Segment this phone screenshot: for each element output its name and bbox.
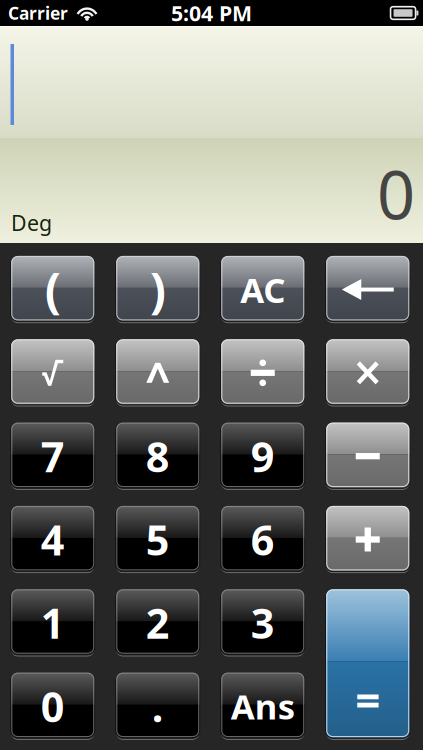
- staticText: (: [45, 258, 61, 321]
- button[interactable]: ): [116, 257, 199, 322]
- staticText: .: [152, 679, 164, 734]
- staticText: 2: [146, 595, 170, 650]
- button[interactable]: 3: [221, 590, 304, 655]
- button[interactable]: 6: [221, 507, 304, 572]
- staticText: 5:04 PM: [171, 0, 252, 27]
- button[interactable]: 4: [11, 507, 94, 572]
- staticText: Carrier: [8, 1, 68, 24]
- button[interactable]: Plus: [326, 507, 409, 572]
- button[interactable]: 0: [11, 674, 94, 739]
- button[interactable]: .: [116, 674, 199, 739]
- staticText: 0: [41, 679, 65, 734]
- button[interactable]: (: [11, 257, 94, 322]
- button[interactable]: Multiply: [326, 340, 409, 405]
- staticText: 4: [41, 512, 65, 567]
- button[interactable]: Square root: [11, 340, 94, 405]
- button[interactable]: Divide: [221, 340, 304, 405]
- button[interactable]: 7: [11, 424, 94, 489]
- staticText: 8: [146, 429, 170, 484]
- staticText: 5: [146, 512, 170, 567]
- staticText: =: [355, 670, 380, 729]
- button[interactable]: Power: [116, 340, 199, 405]
- staticText: AC: [240, 266, 285, 312]
- button[interactable]: =: [326, 590, 409, 739]
- button[interactable]: Ans: [221, 674, 304, 739]
- staticText: Deg: [11, 209, 52, 237]
- button[interactable]: AC: [221, 257, 304, 322]
- staticText: 1: [41, 595, 65, 650]
- button[interactable]: Minus: [326, 424, 409, 489]
- staticText: 6: [251, 512, 275, 567]
- button[interactable]: Delete: [326, 257, 409, 322]
- staticText: 7: [41, 429, 65, 484]
- button[interactable]: 5: [116, 507, 199, 572]
- staticText: 0: [377, 149, 415, 238]
- staticText: 9: [251, 429, 275, 484]
- button[interactable]: 8: [116, 424, 199, 489]
- button[interactable]: 9: [221, 424, 304, 489]
- button[interactable]: 1: [11, 590, 94, 655]
- staticText: Ans: [231, 683, 295, 729]
- staticText: ): [150, 258, 166, 321]
- button[interactable]: 2: [116, 590, 199, 655]
- staticText: 3: [251, 595, 275, 650]
